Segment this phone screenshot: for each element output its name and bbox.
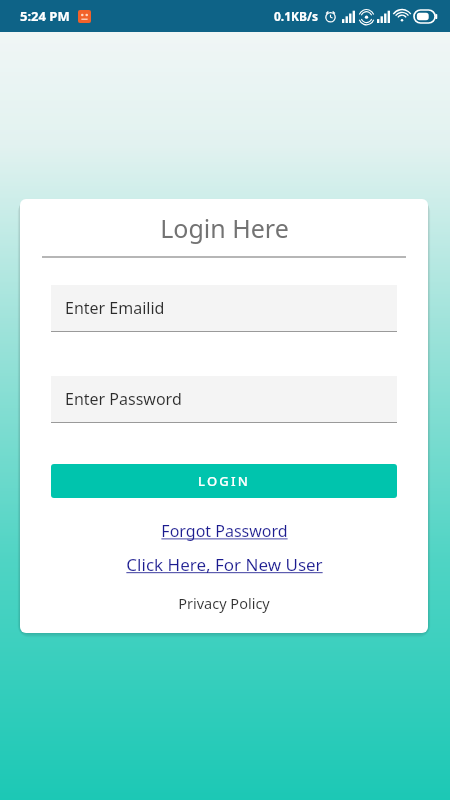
staticText: Click Here, For New User <box>126 553 323 576</box>
staticText: Enter Emailid <box>65 297 165 319</box>
staticText: Forgot Password <box>161 520 288 542</box>
button[interactable]: Forgot Password <box>20 520 428 542</box>
button[interactable]: Enter Password <box>51 376 397 423</box>
staticText: Privacy Policy <box>178 593 270 613</box>
staticText: Enter Password <box>65 388 182 410</box>
button[interactable]: Privacy Policy <box>20 593 428 613</box>
staticText: 0.1KB/s <box>274 8 319 24</box>
button[interactable]: LOGIN <box>51 464 397 498</box>
staticText: 5:24 PM <box>20 7 70 25</box>
button[interactable]: Click Here, For New User <box>20 553 428 576</box>
button[interactable]: Enter Emailid <box>51 285 397 332</box>
staticText: LOGIN <box>198 472 251 490</box>
staticText: Login Here <box>160 211 289 245</box>
